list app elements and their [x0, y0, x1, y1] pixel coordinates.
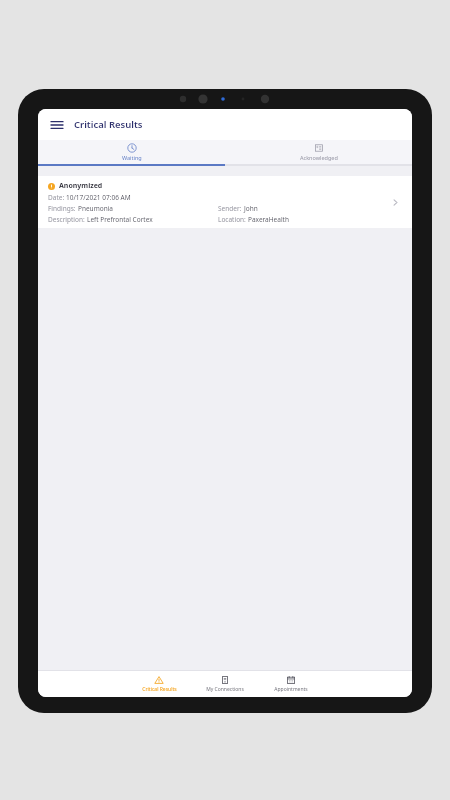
- staticText: PaxeraHealth: [248, 215, 289, 224]
- button[interactable]: Open navigation menu: [46, 114, 68, 136]
- staticText: Anonymized: [59, 181, 103, 191]
- staticText: Left Prefrontal Cortex: [87, 215, 153, 224]
- staticText: 10/17/2021 07:06 AM: [66, 193, 131, 202]
- button[interactable]: Anonymized: [38, 176, 412, 228]
- staticText: Location:: [218, 215, 248, 224]
- button[interactable]: Appointments: [265, 671, 317, 697]
- staticText: John: [244, 204, 258, 213]
- staticText: Waiting: [122, 154, 142, 161]
- staticText: Sender:: [218, 204, 244, 213]
- staticText: Description:: [48, 215, 87, 224]
- button[interactable]: Waiting: [38, 140, 225, 164]
- staticText: Findings:: [48, 204, 78, 213]
- staticText: Pneumonia: [78, 204, 113, 213]
- staticText: Critical Results: [74, 118, 143, 131]
- other: Open details: [388, 195, 402, 209]
- staticText: My Connections: [206, 686, 244, 693]
- staticText: Appointments: [274, 686, 308, 693]
- staticText: Critical Results: [142, 686, 177, 693]
- staticText: Acknowledged: [300, 154, 338, 161]
- button[interactable]: My Connections: [199, 671, 251, 697]
- button[interactable]: Critical Results: [133, 671, 185, 697]
- staticText: Date:: [48, 193, 66, 202]
- button[interactable]: Acknowledged: [225, 140, 412, 164]
